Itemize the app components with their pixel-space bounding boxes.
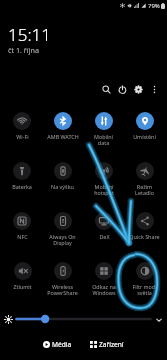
button[interactable]: Režim Letadlo bbox=[124, 155, 165, 205]
button[interactable]: Search bbox=[97, 80, 115, 98]
staticText: 15:11 bbox=[8, 23, 51, 46]
button[interactable]: AMB WATCH bbox=[42, 105, 83, 155]
button[interactable]: Expand brightness bbox=[154, 315, 163, 324]
button[interactable]: Mobilní data bbox=[83, 105, 124, 155]
button[interactable]: Zařízení bbox=[86, 339, 128, 350]
button[interactable]: Umístění bbox=[124, 105, 165, 155]
staticText: čt 1. října bbox=[8, 45, 39, 55]
button[interactable]: Filtr mod. světla bbox=[124, 255, 165, 305]
staticText: Zařízení bbox=[99, 340, 124, 349]
button[interactable]: Brightness bbox=[15, 314, 152, 324]
button[interactable]: Ztlumit bbox=[2, 255, 42, 305]
staticText: Always On Display bbox=[49, 233, 76, 246]
button[interactable]: Wi-Fi bbox=[2, 105, 42, 155]
staticText: AMB WATCH bbox=[47, 133, 79, 140]
staticText: DeX bbox=[99, 233, 110, 240]
staticText: Filtr mod. světla bbox=[132, 283, 157, 296]
button[interactable]: DeX bbox=[83, 205, 124, 255]
button[interactable]: Wireless PowerShare bbox=[42, 255, 83, 305]
button[interactable]: NFC bbox=[2, 205, 42, 255]
button[interactable]: Odkaz na Windows bbox=[83, 255, 124, 305]
button[interactable]: Settings bbox=[129, 80, 147, 98]
staticText: Média bbox=[52, 340, 72, 349]
button[interactable]: Always On Display bbox=[42, 205, 83, 255]
staticText: NFC bbox=[17, 233, 28, 240]
staticText: Ztlumit bbox=[13, 283, 32, 290]
staticText: Wi-Fi bbox=[16, 133, 29, 140]
button[interactable]: Quick Share bbox=[124, 205, 165, 255]
staticText: Režim Letadlo bbox=[135, 183, 154, 196]
button[interactable]: Baterka bbox=[2, 155, 42, 205]
staticText: Umístění bbox=[133, 133, 156, 140]
button[interactable]: Na výšku bbox=[42, 155, 83, 205]
button[interactable]: Média bbox=[39, 339, 76, 350]
staticText: Wireless PowerShare bbox=[47, 283, 78, 296]
button[interactable]: More options bbox=[145, 80, 163, 98]
staticText: Na výšku bbox=[51, 183, 74, 190]
button[interactable]: Power off bbox=[113, 80, 131, 98]
staticText: Quick Share bbox=[129, 233, 160, 240]
staticText: Mobilní hotspot bbox=[94, 183, 114, 196]
staticText: Odkaz na Windows bbox=[92, 283, 116, 296]
button[interactable]: Mobilní hotspot bbox=[83, 155, 124, 205]
staticText: 79% bbox=[148, 2, 160, 10]
staticText: Mobilní data bbox=[94, 133, 113, 146]
staticText: Baterka bbox=[12, 183, 32, 190]
